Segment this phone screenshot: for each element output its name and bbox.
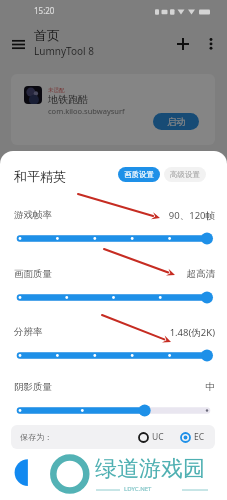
button[interactable]: UC [138,431,164,443]
staticText: 超高清 [0,268,215,280]
button[interactable]: Menu [4,30,32,58]
staticText: 90、120帧 [0,209,215,222]
staticText: 和平精英 [14,168,66,184]
staticText: UC [152,431,164,443]
button[interactable] [14,232,213,245]
staticText: 画面质量 [14,268,52,280]
button[interactable]: 高级设置 [164,167,206,182]
staticText: 启动 [167,116,185,127]
button[interactable] [14,291,213,304]
staticText: 15:20 [34,5,55,16]
button[interactable] [14,404,213,417]
staticText: com.kiloo.subwaysurf [48,106,125,116]
staticText: 游戏帧率 [14,209,52,221]
button[interactable] [14,349,213,362]
button[interactable]: 启动 [153,113,199,130]
staticText: 阴影质量 [14,381,52,393]
staticText: 分辨率 [14,326,43,338]
staticText: 绿道游戏园 [95,455,205,483]
staticText: 首页 [34,27,60,43]
button[interactable]: More options [199,32,223,56]
staticText: LumnyTool 8 [34,44,94,58]
staticText: 中 [0,381,215,393]
button[interactable]: Add [170,31,196,57]
staticText: 画质设置 [124,170,154,179]
staticText: EC [194,431,205,443]
staticText: 高级设置 [170,170,200,179]
staticText: 保存为： [20,432,52,442]
button[interactable]: 画质设置 [118,167,160,182]
staticText: LDYC.NET [124,485,152,493]
button[interactable]: EC [180,431,205,443]
button[interactable]: 未适配 [11,74,215,145]
staticText: 1.48(伪2K) [0,326,215,339]
staticText: 地铁跑酷 [48,93,88,106]
staticText: 未适配 [48,87,65,94]
